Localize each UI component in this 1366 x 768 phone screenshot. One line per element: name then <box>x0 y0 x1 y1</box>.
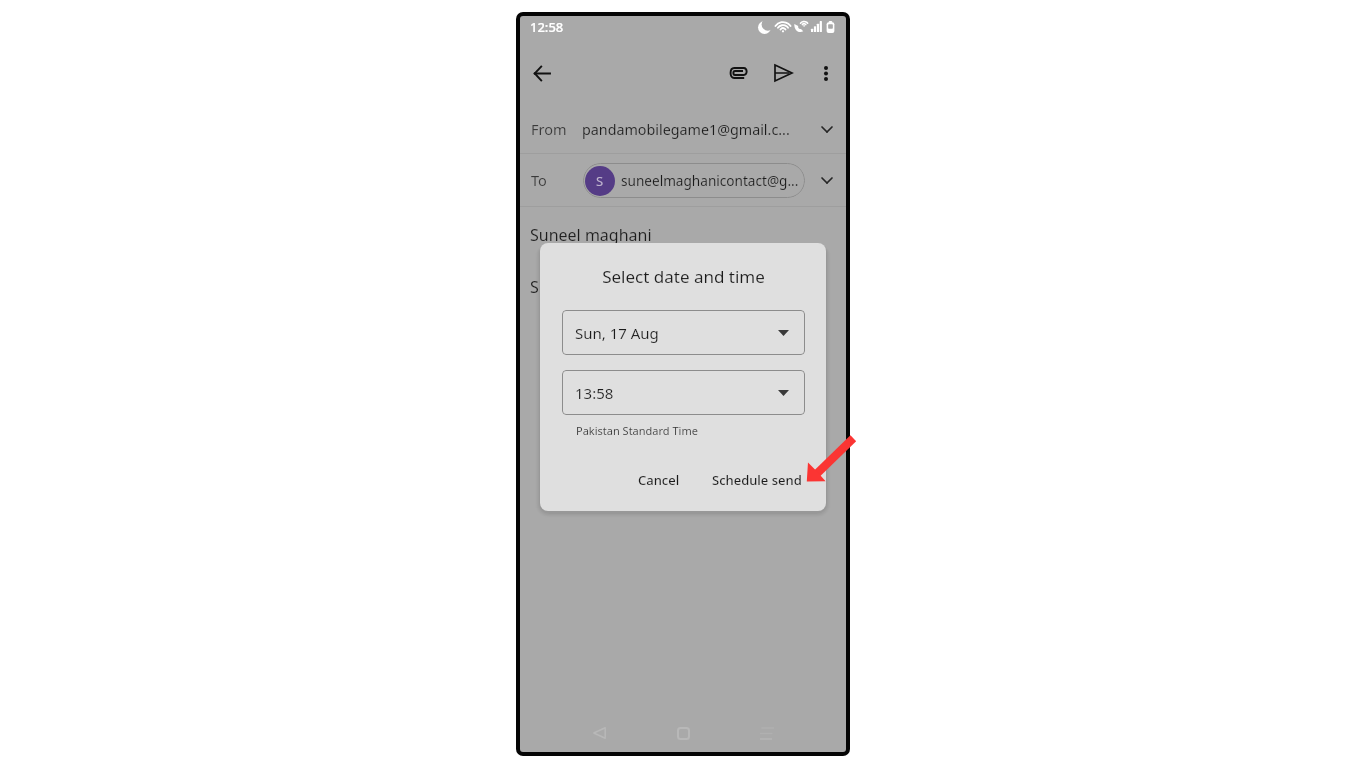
button[interactable]: More options <box>806 53 846 93</box>
button[interactable]: Sun, 17 Aug <box>562 310 805 355</box>
staticText: Schedule send <box>712 471 802 489</box>
staticText: Cancel <box>638 471 680 489</box>
button[interactable]: Attach file <box>719 53 759 93</box>
staticText: Subject <box>530 276 586 298</box>
button[interactable]: Home <box>666 716 700 750</box>
staticText: suneelmaghanicontact@g... <box>621 171 799 190</box>
staticText: Suneel maghani <box>530 224 652 246</box>
staticText: 12:58 <box>530 18 564 36</box>
staticText: S <box>596 172 604 190</box>
staticText: Sun, 17 Aug <box>575 323 778 343</box>
staticText: To <box>531 170 547 190</box>
staticText: Pakistan Standard Time <box>576 423 698 438</box>
button[interactable]: 13:58 <box>562 370 805 415</box>
staticText: Select date and time <box>602 265 765 288</box>
button[interactable]: To <box>520 154 846 206</box>
staticText: 13:58 <box>575 383 778 403</box>
button[interactable]: Back <box>522 53 562 93</box>
button[interactable]: Cancel <box>626 461 692 499</box>
button[interactable]: Schedule send <box>700 461 814 499</box>
button[interactable]: Send <box>763 53 803 93</box>
button[interactable]: From <box>520 106 846 152</box>
staticText: From <box>531 119 567 139</box>
staticText: pandamobilegame1@gmail.c... <box>582 120 807 139</box>
